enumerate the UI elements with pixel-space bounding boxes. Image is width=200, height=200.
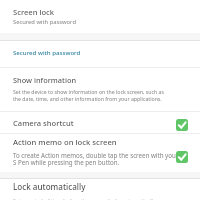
staticText: To create Action memos, double tap the s… [13, 151, 179, 167]
staticText: Set a period of time before the screen l… [13, 197, 157, 200]
staticText: Action memo on lock screen [13, 137, 117, 147]
staticText: Set the device to show information on th… [13, 88, 164, 103]
staticText: Screen lock [13, 7, 55, 17]
staticText: Secured with password [13, 48, 81, 56]
button[interactable]: Secured with password [0, 41, 200, 67]
staticText: Show information [13, 75, 77, 85]
staticText: Camera shortcut [13, 118, 74, 128]
button[interactable]: Show information [0, 68, 200, 111]
staticText: Secured with password [13, 18, 76, 26]
button[interactable]: Lock automatically [0, 179, 200, 200]
button[interactable]: Action memo on lock screen [0, 134, 200, 172]
button[interactable]: Camera shortcut [0, 112, 200, 133]
staticText: Lock automatically [13, 181, 86, 192]
